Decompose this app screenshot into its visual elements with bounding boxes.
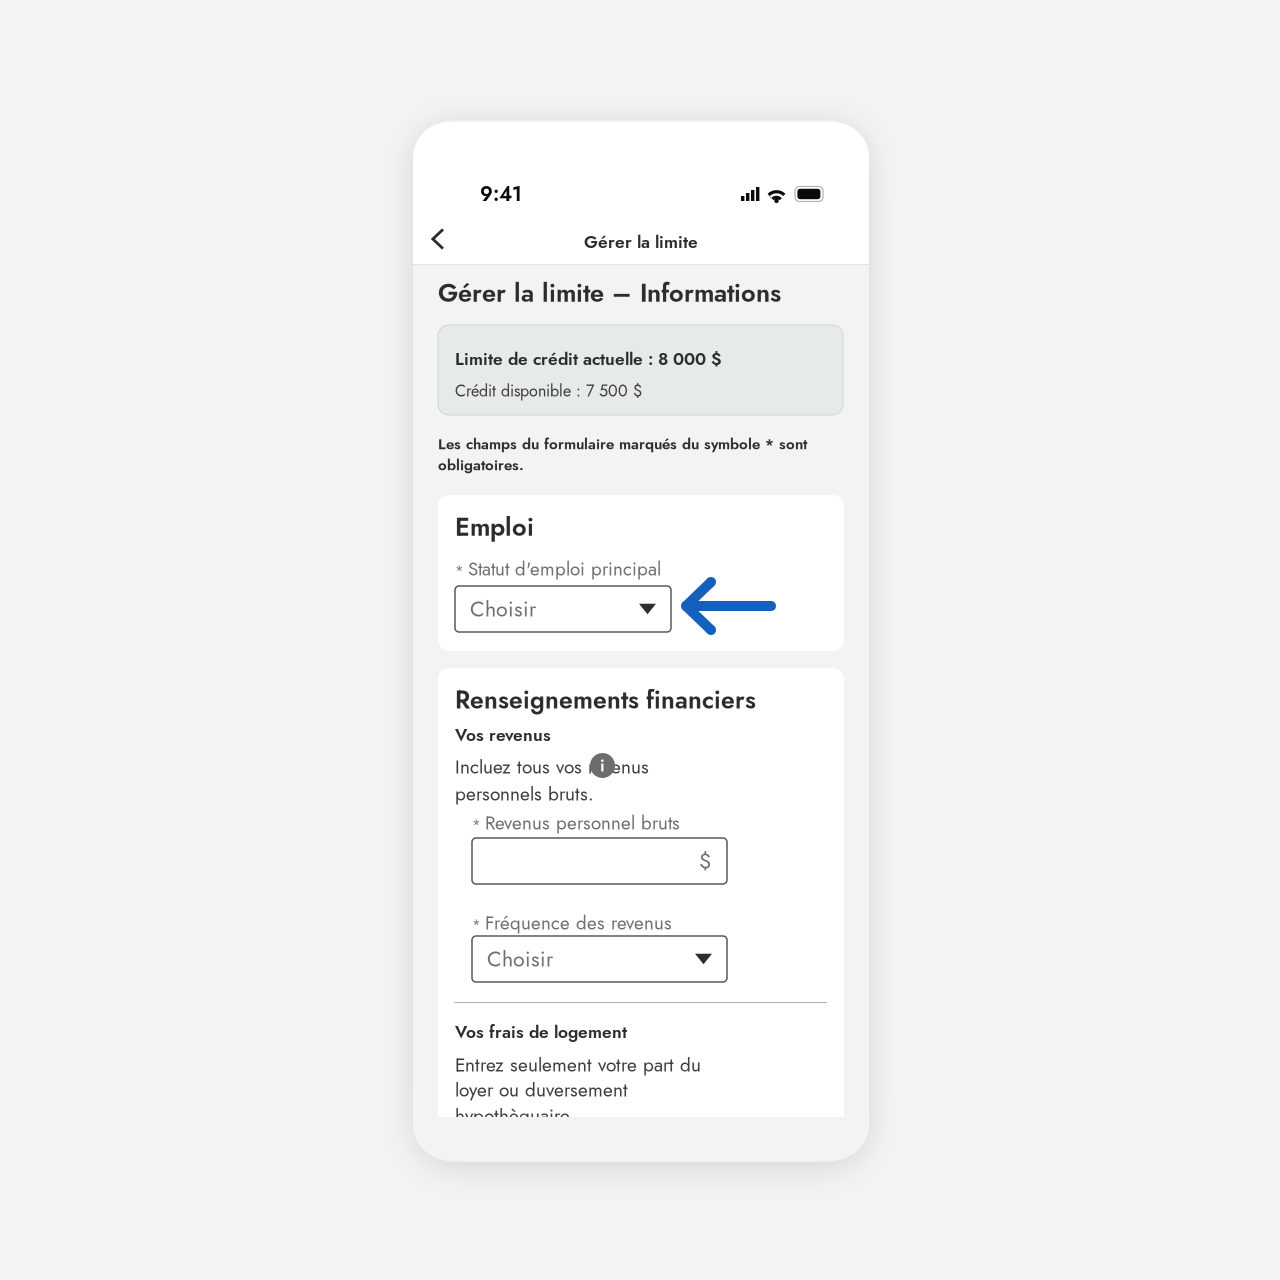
staticText: Revenus personnel bruts bbox=[485, 809, 680, 836]
button[interactable]: Choisir bbox=[472, 936, 727, 982]
staticText: Fréquence des revenus bbox=[485, 909, 672, 936]
staticText: Vos revenus bbox=[455, 722, 551, 747]
button[interactable]: Information sur les revenus bbox=[590, 753, 615, 778]
staticText: * bbox=[455, 560, 464, 581]
staticText: * bbox=[472, 814, 481, 835]
staticText: personnels bruts. bbox=[455, 780, 594, 808]
staticText: Gérer la limite bbox=[584, 229, 698, 254]
staticText: * bbox=[472, 914, 481, 935]
button[interactable]: $ bbox=[472, 838, 727, 884]
staticText: $ bbox=[699, 846, 711, 876]
staticText: Les champs du formulaire marqués du symb… bbox=[438, 433, 807, 455]
staticText: hypothèquaire bbox=[455, 1102, 570, 1130]
staticText: obligatoires. bbox=[438, 454, 524, 476]
staticText: Limite de crédit actuelle : 8 000 $ bbox=[455, 346, 722, 371]
staticText: Renseignements financiers bbox=[455, 682, 756, 718]
staticText: loyer ou duversement bbox=[455, 1076, 628, 1104]
staticText: Emploi bbox=[455, 509, 534, 545]
staticText: Vos frais de logement bbox=[455, 1019, 627, 1044]
staticText: i bbox=[600, 753, 605, 778]
button[interactable]: Retour bbox=[418, 219, 458, 259]
button[interactable]: Choisir bbox=[455, 586, 671, 632]
staticText: Choisir bbox=[470, 594, 536, 624]
staticText: Crédit disponible : 7 500 $ bbox=[455, 379, 642, 402]
staticText: 9:41 bbox=[480, 179, 522, 208]
staticText: Entrez seulement votre part du bbox=[455, 1051, 701, 1079]
staticText: Statut d'emploi principal bbox=[468, 555, 661, 582]
staticText: Incluez tous vos revenus bbox=[455, 753, 649, 781]
staticText: Gérer la limite – Informations bbox=[438, 275, 781, 311]
staticText: Choisir bbox=[487, 944, 553, 974]
